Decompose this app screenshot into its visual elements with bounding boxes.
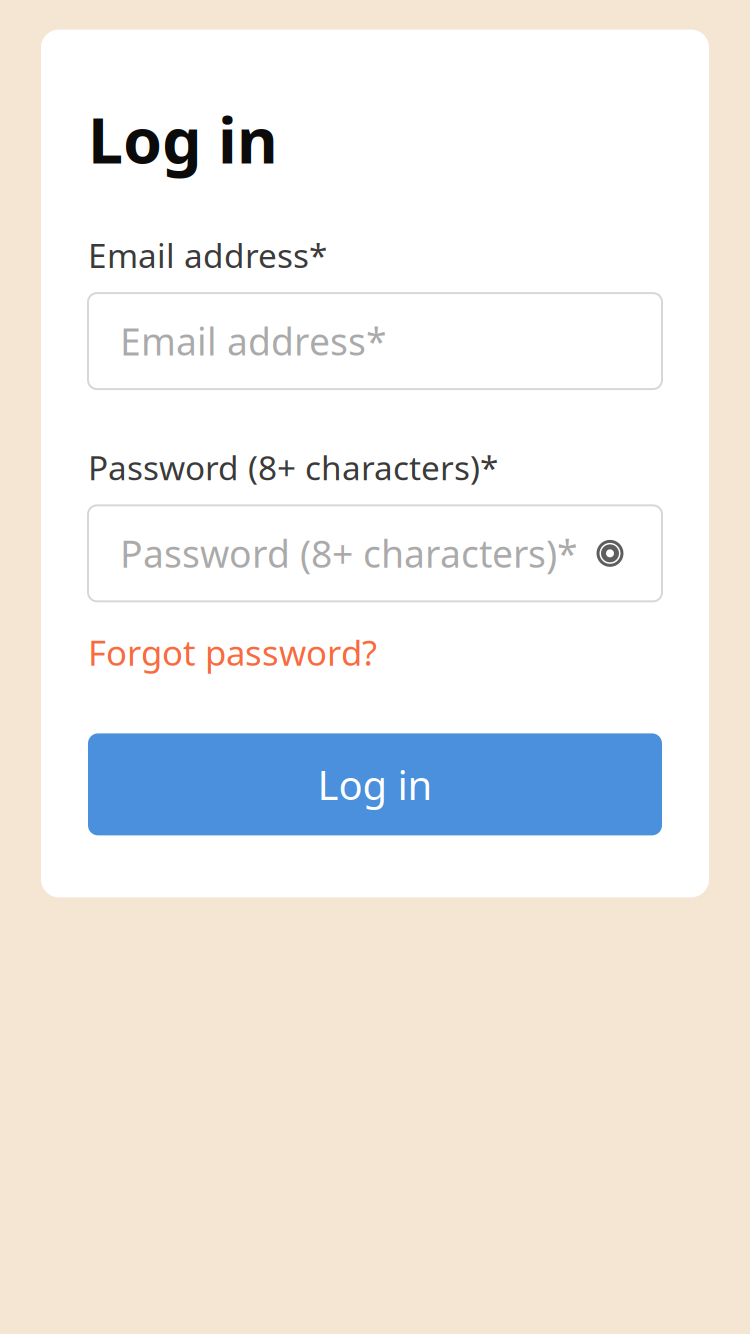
button[interactable]: Log in	[88, 733, 662, 835]
staticText: Password (8+ characters)*	[88, 445, 498, 489]
staticText: Email address*	[120, 316, 387, 366]
button[interactable]: Email address*	[88, 293, 662, 389]
staticText: Log in	[88, 98, 278, 181]
staticText: Forgot password?	[88, 629, 377, 675]
staticText: Log in	[317, 758, 432, 811]
button[interactable]: Forgot password?	[88, 601, 377, 681]
staticText: Password (8+ characters)*	[120, 529, 578, 578]
staticText: Email address*	[88, 233, 327, 277]
button[interactable]: Password (8+ characters)*	[88, 505, 662, 601]
